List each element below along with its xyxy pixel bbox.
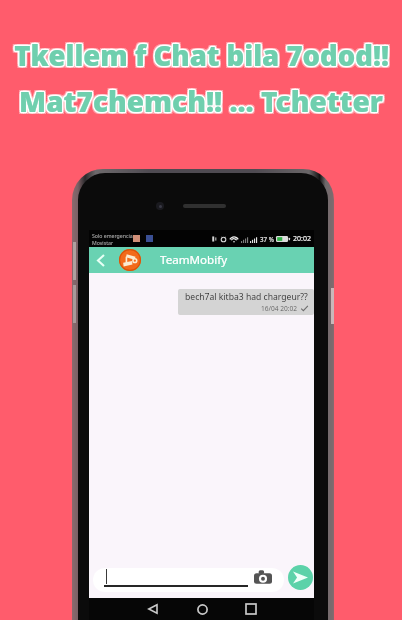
staticText: Mat7chemch!! ... Tchetter [18,83,382,121]
staticText: Mat7chemch!! ... Tchetter [19,84,383,122]
staticText: bech7al kitba3 had chargeur?? [185,291,308,303]
staticText: Tkellem f Chat bila 7odod!! [13,37,388,74]
staticText: Solo emergencia [92,232,133,239]
staticText: Mat7chemch!! ... Tchetter [19,83,383,121]
staticText: Mat7chemch!! ... Tchetter [19,80,383,118]
staticText: Tkellem f Chat bila 7odod!! [14,36,389,73]
button[interactable]: Back [142,599,162,619]
staticText: Mat7chemch!! ... Tchetter [21,84,385,122]
staticText: Tkellem f Chat bila 7odod!! [12,35,387,72]
staticText: Tkellem f Chat bila 7odod!! [15,37,390,74]
staticText: Tkellem f Chat bila 7odod!! [13,38,388,75]
staticText: Mat7chemch!! ... Tchetter [21,82,385,120]
staticText: Tkellem f Chat bila 7odod!! [14,37,389,74]
staticText: Tkellem f Chat bila 7odod!! [16,35,391,72]
staticText: Mat7chemch!! ... Tchetter [19,81,383,119]
staticText: Mat7chemch!! ... Tchetter [19,82,383,120]
button[interactable]: Back [93,252,109,268]
button[interactable]: Camera [93,568,284,592]
staticText: Mat7chemch!! ... Tchetter [20,82,384,120]
staticText: Mat7chemch!! ... Tchetter [17,80,381,118]
staticText: Mat7chemch!! ... Tchetter [18,81,382,119]
staticText: 37 % [260,235,274,243]
staticText: Mat7chemch!! ... Tchetter [21,80,385,118]
button[interactable]: Recents [241,599,261,619]
staticText: Tkellem f Chat bila 7odod!! [16,39,391,76]
staticText: Tkellem f Chat bila 7odod!! [14,38,389,75]
staticText: Mat7chemch!! ... Tchetter [20,81,384,119]
staticText: 16/04 20:02 [261,304,298,313]
staticText: Tkellem f Chat bila 7odod!! [15,36,390,73]
staticText: Tkellem f Chat bila 7odod!! [16,37,391,74]
staticText: Movistar [92,239,114,246]
staticText: Mat7chemch!! ... Tchetter [18,82,382,120]
button[interactable]: Camera [254,570,272,585]
button[interactable]: Send [288,565,313,590]
button[interactable]: Home [192,599,212,619]
staticText: Tkellem f Chat bila 7odod!! [15,38,390,75]
staticText: Tkellem f Chat bila 7odod!! [14,35,389,72]
staticText: Tkellem f Chat bila 7odod!! [13,36,388,73]
staticText: Tkellem f Chat bila 7odod!! [12,37,387,74]
button[interactable]: bech7al kitba3 had chargeur?? [178,289,314,315]
staticText: Tkellem f Chat bila 7odod!! [12,39,387,76]
staticText: Mat7chemch!! ... Tchetter [17,82,381,120]
staticText: 20:02 [293,234,311,244]
staticText: TeamMobify [160,252,228,268]
staticText: Mat7chemch!! ... Tchetter [17,84,381,122]
staticText: Mat7chemch!! ... Tchetter [20,83,384,121]
staticText: Tkellem f Chat bila 7odod!! [14,39,389,76]
